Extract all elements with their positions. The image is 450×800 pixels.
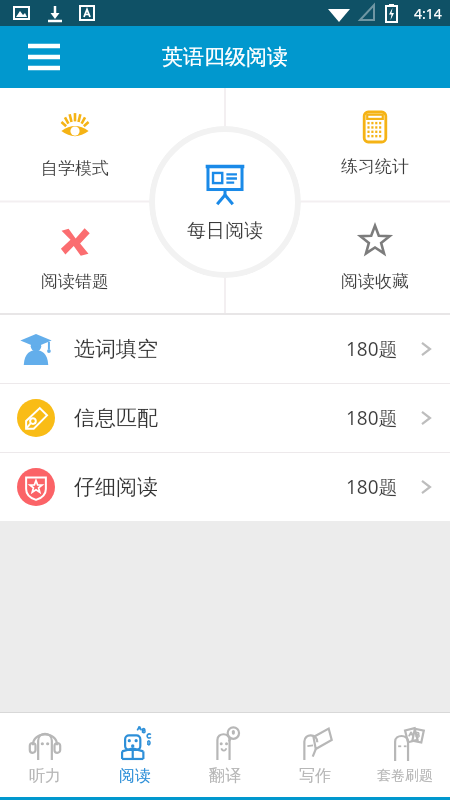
button[interactable]: 练习统计 xyxy=(300,88,450,201)
staticText: 选词填空 xyxy=(74,336,158,362)
button[interactable]: Menu xyxy=(18,31,70,83)
staticText: 每日阅读 xyxy=(187,219,263,243)
button[interactable]: 选词填空 xyxy=(0,315,450,383)
button[interactable]: 阅读 xyxy=(90,713,180,797)
button[interactable]: 听力 xyxy=(0,713,90,797)
staticText: 180题 xyxy=(346,474,398,500)
staticText: 180题 xyxy=(346,405,398,431)
staticText: 4:14 xyxy=(414,4,442,23)
button[interactable]: 自学模式 xyxy=(0,88,150,201)
staticText: 翻译 xyxy=(209,766,241,786)
button[interactable]: 阅读错题 xyxy=(0,201,150,315)
staticText: 阅读错题 xyxy=(41,271,109,292)
staticText: 仔细阅读 xyxy=(74,474,158,500)
staticText: 听力 xyxy=(29,766,61,786)
staticText: 套卷刷题 xyxy=(377,767,433,785)
staticText: 阅读 xyxy=(119,766,151,786)
staticText: 写作 xyxy=(299,766,331,786)
button[interactable]: 写作 xyxy=(270,713,360,797)
staticText: 练习统计 xyxy=(341,156,409,177)
button[interactable]: 每日阅读 xyxy=(149,126,301,278)
staticText: 阅读收藏 xyxy=(341,271,409,292)
button[interactable]: 套卷刷题 xyxy=(360,713,450,797)
button[interactable]: 翻译 xyxy=(180,713,270,797)
button[interactable]: 信息匹配 xyxy=(0,384,450,452)
staticText: 英语四级阅读 xyxy=(162,44,288,70)
button[interactable]: 仔细阅读 xyxy=(0,453,450,521)
button[interactable]: 阅读收藏 xyxy=(300,201,450,315)
staticText: 自学模式 xyxy=(41,158,109,179)
staticText: 信息匹配 xyxy=(74,405,158,431)
staticText: 180题 xyxy=(346,336,398,362)
